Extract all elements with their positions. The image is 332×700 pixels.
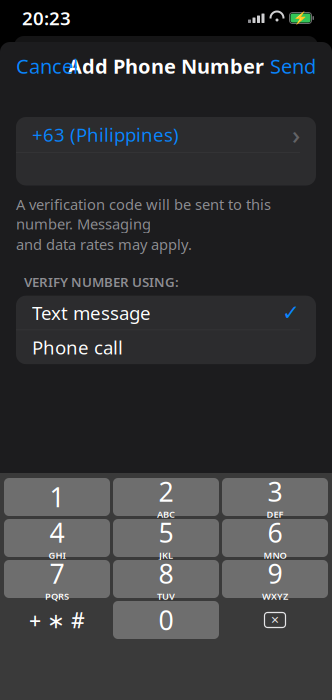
staticText: ⚡ xyxy=(293,11,308,25)
button[interactable]: 2 xyxy=(113,478,219,516)
staticText: 20:23 xyxy=(22,6,71,30)
staticText: JKL xyxy=(159,549,173,561)
staticText: GHI xyxy=(48,549,65,561)
staticText: ✕ xyxy=(270,614,279,626)
staticText: Phone call xyxy=(32,335,123,359)
button[interactable]: Phone call xyxy=(16,330,316,364)
button[interactable]: 4 xyxy=(4,519,110,557)
staticText: Add Phone Number xyxy=(68,53,264,79)
staticText: ABC xyxy=(157,508,175,520)
button[interactable]: Cancel xyxy=(0,43,94,89)
staticText: TUV xyxy=(157,590,175,602)
staticText: ✓ xyxy=(282,300,300,325)
staticText: 5 xyxy=(158,515,173,550)
staticText: and data rates may apply. xyxy=(16,234,192,254)
button[interactable]: Delete xyxy=(222,601,328,639)
staticText: Text message xyxy=(32,300,151,325)
button[interactable]: 0 xyxy=(113,601,219,639)
staticText: Cancel xyxy=(16,53,78,79)
button[interactable]: 1 xyxy=(4,478,110,516)
button[interactable]: Text message xyxy=(16,296,316,330)
staticText: 6 xyxy=(267,515,282,550)
staticText: +63 (Philippines) xyxy=(32,122,179,147)
button[interactable]: 7 xyxy=(4,560,110,598)
staticText: VERIFY NUMBER USING: xyxy=(24,273,179,291)
staticText: 4 xyxy=(49,515,64,550)
button[interactable]: 3 xyxy=(222,478,328,516)
staticText: 1 xyxy=(49,479,64,515)
button[interactable]: +63 (Philippines) xyxy=(16,117,316,152)
staticText: 3 xyxy=(267,474,282,509)
staticText: PQRS xyxy=(45,590,69,602)
staticText: 9 xyxy=(267,556,282,591)
button[interactable]: Send xyxy=(254,43,332,89)
staticText: + ∗ # xyxy=(29,606,85,634)
button[interactable]: + ∗ # xyxy=(4,601,110,639)
button[interactable]: 8 xyxy=(113,560,219,598)
button[interactable]: 9 xyxy=(222,560,328,598)
staticText: 2 xyxy=(158,474,173,509)
staticText: WXYZ xyxy=(262,590,288,602)
staticText: 0 xyxy=(158,602,173,638)
staticText: 7 xyxy=(49,556,64,591)
staticText: A verification code will be sent to this… xyxy=(16,194,271,233)
staticText: MNO xyxy=(263,549,286,561)
button[interactable]: 5 xyxy=(113,519,219,557)
staticText: DEF xyxy=(266,508,283,520)
staticText: 8 xyxy=(158,556,173,591)
staticText: › xyxy=(292,118,300,151)
button[interactable]: 6 xyxy=(222,519,328,557)
staticText: Send xyxy=(270,53,316,79)
